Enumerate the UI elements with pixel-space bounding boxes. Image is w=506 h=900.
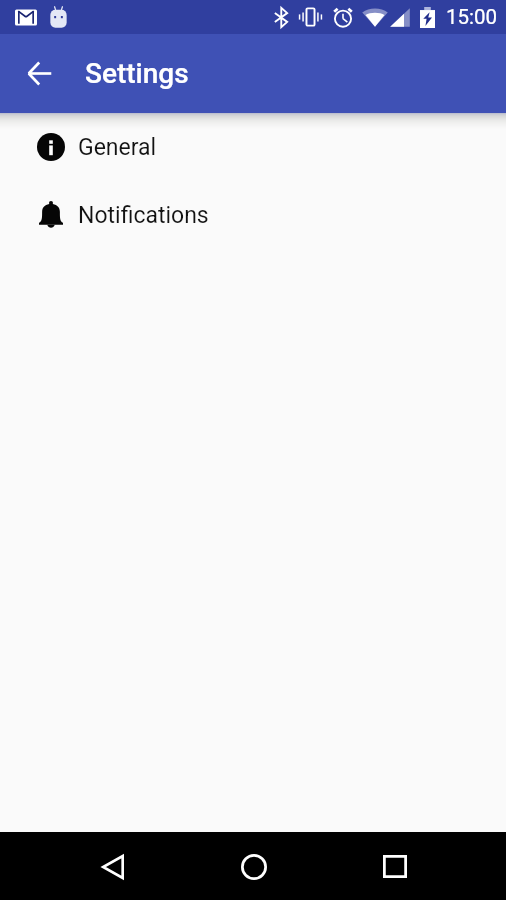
button[interactable]: Navigate up	[17, 51, 62, 96]
staticText: General	[78, 134, 157, 161]
button[interactable]: Recent apps	[361, 833, 428, 900]
button[interactable]: General	[0, 113, 506, 181]
staticText: Settings	[85, 57, 189, 90]
button[interactable]: Home	[220, 833, 287, 900]
button[interactable]: Notifications	[0, 181, 506, 249]
staticText: Notifications	[78, 202, 209, 229]
staticText: 15:00	[446, 5, 498, 29]
button[interactable]: Back	[79, 833, 146, 900]
